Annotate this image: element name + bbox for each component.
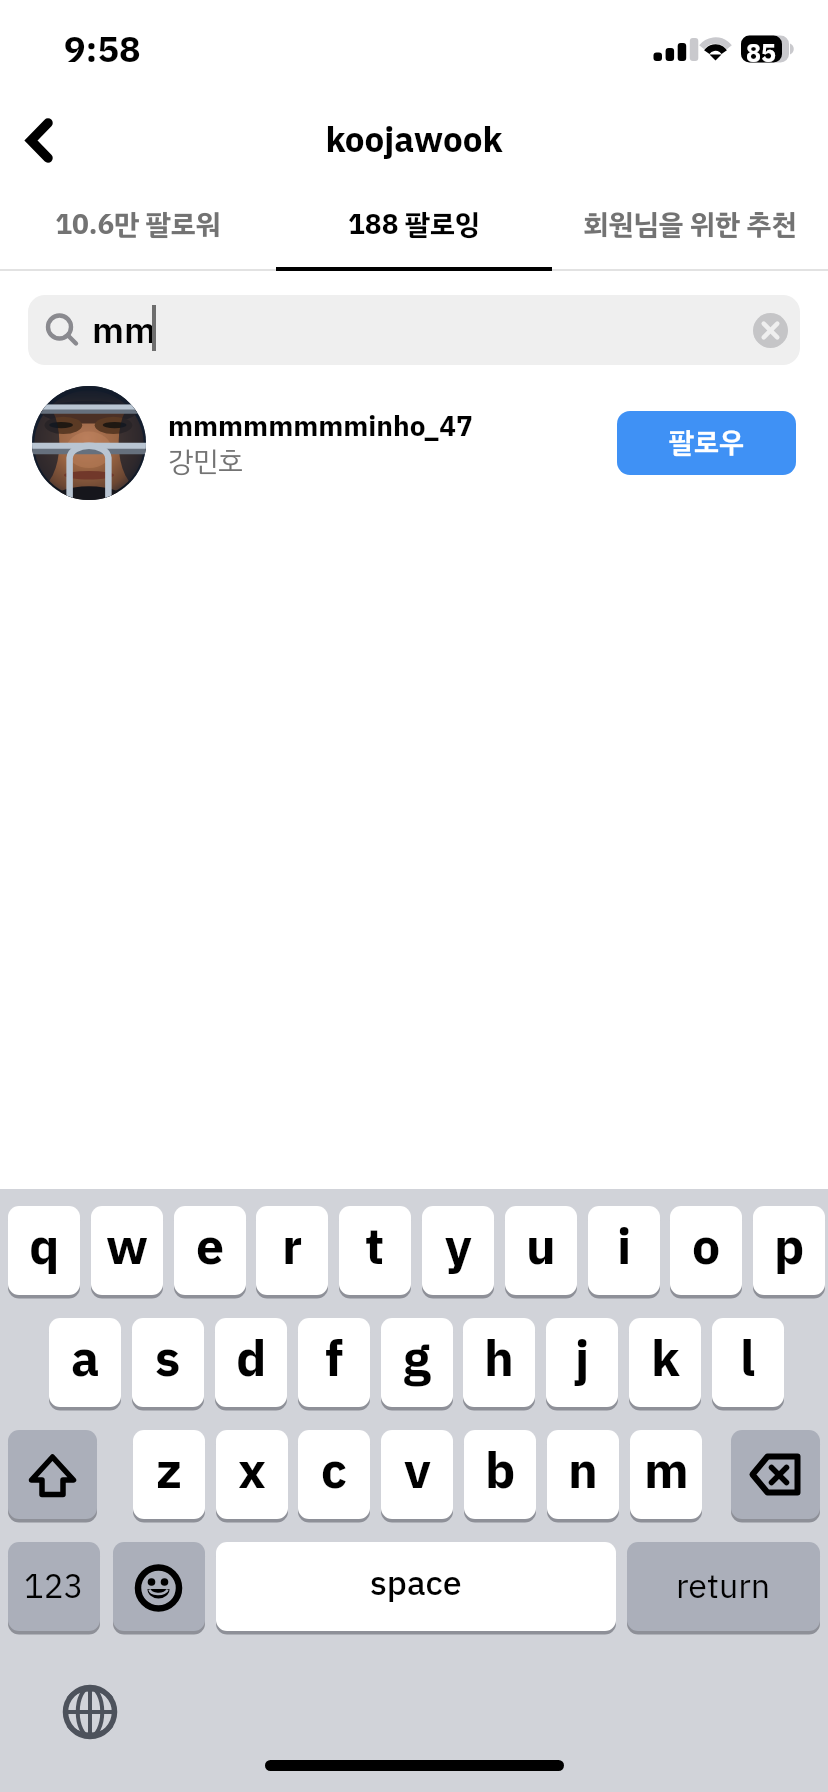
button[interactable]: d <box>215 1318 287 1407</box>
button[interactable]: v <box>381 1430 453 1519</box>
staticText: mmmmmmmminho_47 <box>168 406 473 448</box>
button[interactable]: u <box>505 1206 577 1295</box>
button[interactable]: t <box>339 1206 411 1295</box>
button[interactable]: s <box>132 1318 204 1407</box>
staticText: g <box>403 1322 431 1397</box>
staticText: h <box>484 1322 514 1397</box>
staticText: q <box>29 1210 60 1285</box>
button[interactable]: 123 <box>8 1542 100 1631</box>
button[interactable]: q <box>8 1206 80 1295</box>
staticText: u <box>526 1210 556 1285</box>
staticText: f <box>325 1322 344 1397</box>
button[interactable]: e <box>174 1206 246 1295</box>
button[interactable]: mmmmmmmminho_47 <box>0 385 828 501</box>
button[interactable]: z <box>133 1430 205 1519</box>
button[interactable]: p <box>753 1206 825 1295</box>
button[interactable]: Back <box>0 96 90 186</box>
staticText: z <box>156 1434 182 1509</box>
button[interactable]: j <box>546 1318 618 1407</box>
button[interactable]: space <box>216 1542 616 1631</box>
staticText: 9:58 <box>64 23 141 77</box>
button[interactable]: g <box>381 1318 453 1407</box>
button[interactable]: l <box>712 1318 784 1407</box>
staticText: return <box>676 1561 771 1612</box>
staticText: 10.6만 팔로워 <box>55 204 221 246</box>
button[interactable]: 188 팔로잉 <box>276 196 552 271</box>
staticText: v <box>404 1434 431 1509</box>
staticText: d <box>236 1322 267 1397</box>
button[interactable]: return <box>627 1542 820 1631</box>
button[interactable]: y <box>422 1206 494 1295</box>
button[interactable]: i <box>588 1206 660 1295</box>
staticText: b <box>485 1434 516 1509</box>
button[interactable]: m <box>630 1430 702 1519</box>
staticText: 팔로우 <box>669 422 744 464</box>
button[interactable]: w <box>91 1206 163 1295</box>
button[interactable]: r <box>256 1206 328 1295</box>
button[interactable]: Emoji <box>113 1542 205 1631</box>
staticText: w <box>106 1210 149 1285</box>
staticText: x <box>238 1434 266 1509</box>
staticText: c <box>321 1434 347 1509</box>
staticText: mm <box>92 304 156 358</box>
button[interactable]: mm <box>28 295 800 365</box>
staticText: y <box>445 1210 472 1285</box>
button[interactable]: b <box>464 1430 536 1519</box>
staticText: 123 <box>24 1562 84 1612</box>
button[interactable]: n <box>547 1430 619 1519</box>
button[interactable]: h <box>463 1318 535 1407</box>
button[interactable]: x <box>216 1430 288 1519</box>
staticText: s <box>155 1322 181 1397</box>
button[interactable]: o <box>670 1206 742 1295</box>
staticText: 강민호 <box>168 441 243 483</box>
staticText: i <box>617 1210 632 1285</box>
button[interactable]: Change keyboard <box>60 1682 120 1742</box>
staticText: o <box>692 1210 721 1285</box>
staticText: p <box>774 1210 805 1285</box>
staticText: j <box>575 1322 590 1397</box>
button[interactable]: k <box>629 1318 701 1407</box>
staticText: k <box>651 1322 680 1397</box>
button[interactable]: Clear search <box>753 313 788 348</box>
button[interactable]: Backspace <box>731 1430 820 1519</box>
button[interactable]: 10.6만 팔로워 <box>0 196 276 271</box>
staticText: t <box>365 1210 385 1285</box>
button[interactable]: 팔로우 <box>617 411 796 475</box>
staticText: n <box>568 1434 598 1509</box>
button[interactable]: c <box>298 1430 370 1519</box>
staticText: 188 팔로잉 <box>348 204 480 246</box>
staticText: 85 <box>746 35 777 62</box>
staticText: a <box>71 1322 100 1397</box>
button[interactable]: 회원님을 위한 추천 <box>552 196 828 271</box>
staticText: r <box>282 1210 303 1285</box>
staticText: m <box>644 1434 689 1509</box>
staticText: e <box>196 1210 225 1285</box>
staticText: koojawook <box>0 114 828 186</box>
staticText: l <box>740 1322 756 1397</box>
staticText: 회원님을 위한 추천 <box>583 204 797 246</box>
button[interactable]: a <box>49 1318 121 1407</box>
staticText: space <box>370 1558 462 1609</box>
button[interactable]: Shift <box>8 1430 97 1519</box>
button[interactable]: f <box>298 1318 370 1407</box>
